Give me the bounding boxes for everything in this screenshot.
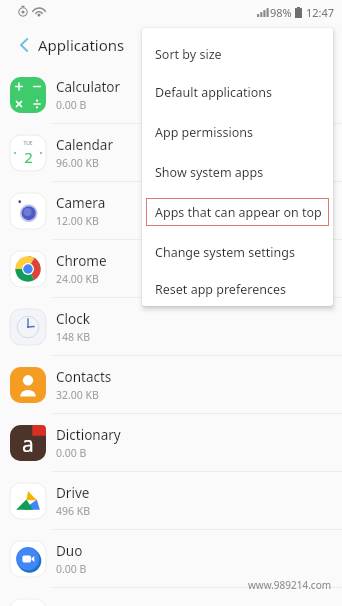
staticText: 0.00 B	[56, 98, 87, 112]
button[interactable]: a	[0, 414, 342, 471]
staticText: Reset app preferences	[155, 281, 286, 298]
staticText: App permissions	[155, 124, 253, 141]
staticText: 32.00 KB	[56, 388, 99, 402]
button[interactable]: Calculator	[0, 66, 342, 123]
button[interactable]: Apps that can appear on top	[142, 192, 333, 232]
button[interactable]: Clock	[0, 298, 342, 355]
staticText: Drive	[56, 484, 90, 502]
button[interactable]: Camera	[0, 182, 342, 239]
button[interactable]: Reset app preferences	[142, 272, 333, 306]
button[interactable]: Drive	[0, 472, 342, 529]
staticText: 496 KB	[56, 504, 91, 518]
button[interactable]: Change system settings	[142, 232, 333, 272]
button[interactable]: Default applications	[142, 72, 333, 112]
staticText: Clock	[56, 310, 90, 328]
staticText: 148 KB	[56, 330, 91, 344]
staticText: 2	[24, 147, 33, 167]
button[interactable]: App permissions	[142, 112, 333, 152]
staticText: www.989214.com	[248, 578, 332, 592]
staticText: Sort by size	[155, 46, 222, 63]
staticText: Calculator	[56, 78, 121, 96]
staticText: TUE	[23, 140, 33, 147]
button[interactable]: Email	[0, 588, 342, 606]
staticText: 24.00 KB	[56, 272, 99, 286]
button[interactable]: TUE	[0, 124, 342, 181]
button[interactable]: Chrome	[0, 240, 342, 297]
staticText: Dictionary	[56, 426, 121, 444]
button[interactable]: Show system apps	[142, 152, 333, 192]
staticText: Contacts	[56, 368, 112, 386]
staticText: 12:47	[306, 5, 335, 20]
staticText: 0.00 B	[56, 562, 87, 576]
staticText: Apps that can appear on top	[155, 204, 322, 221]
staticText: Camera	[56, 194, 106, 212]
staticText: Duo	[56, 542, 83, 560]
staticText: Show system apps	[155, 164, 264, 181]
button[interactable]: Contacts	[0, 356, 342, 413]
staticText: Applications	[38, 35, 125, 55]
staticText: 0.00 B	[56, 446, 87, 460]
button[interactable]: Duo	[0, 530, 342, 587]
button[interactable]: Back	[10, 32, 36, 58]
staticText: 98%	[270, 5, 292, 20]
staticText: 12.00 KB	[56, 214, 99, 228]
staticText: a	[22, 430, 34, 459]
staticText: Chrome	[56, 252, 107, 270]
staticText: 96.00 KB	[56, 156, 99, 170]
staticText: Calendar	[56, 136, 113, 154]
staticText: Change system settings	[155, 244, 295, 261]
staticText: Default applications	[155, 84, 273, 101]
button[interactable]: Sort by size	[142, 36, 333, 72]
